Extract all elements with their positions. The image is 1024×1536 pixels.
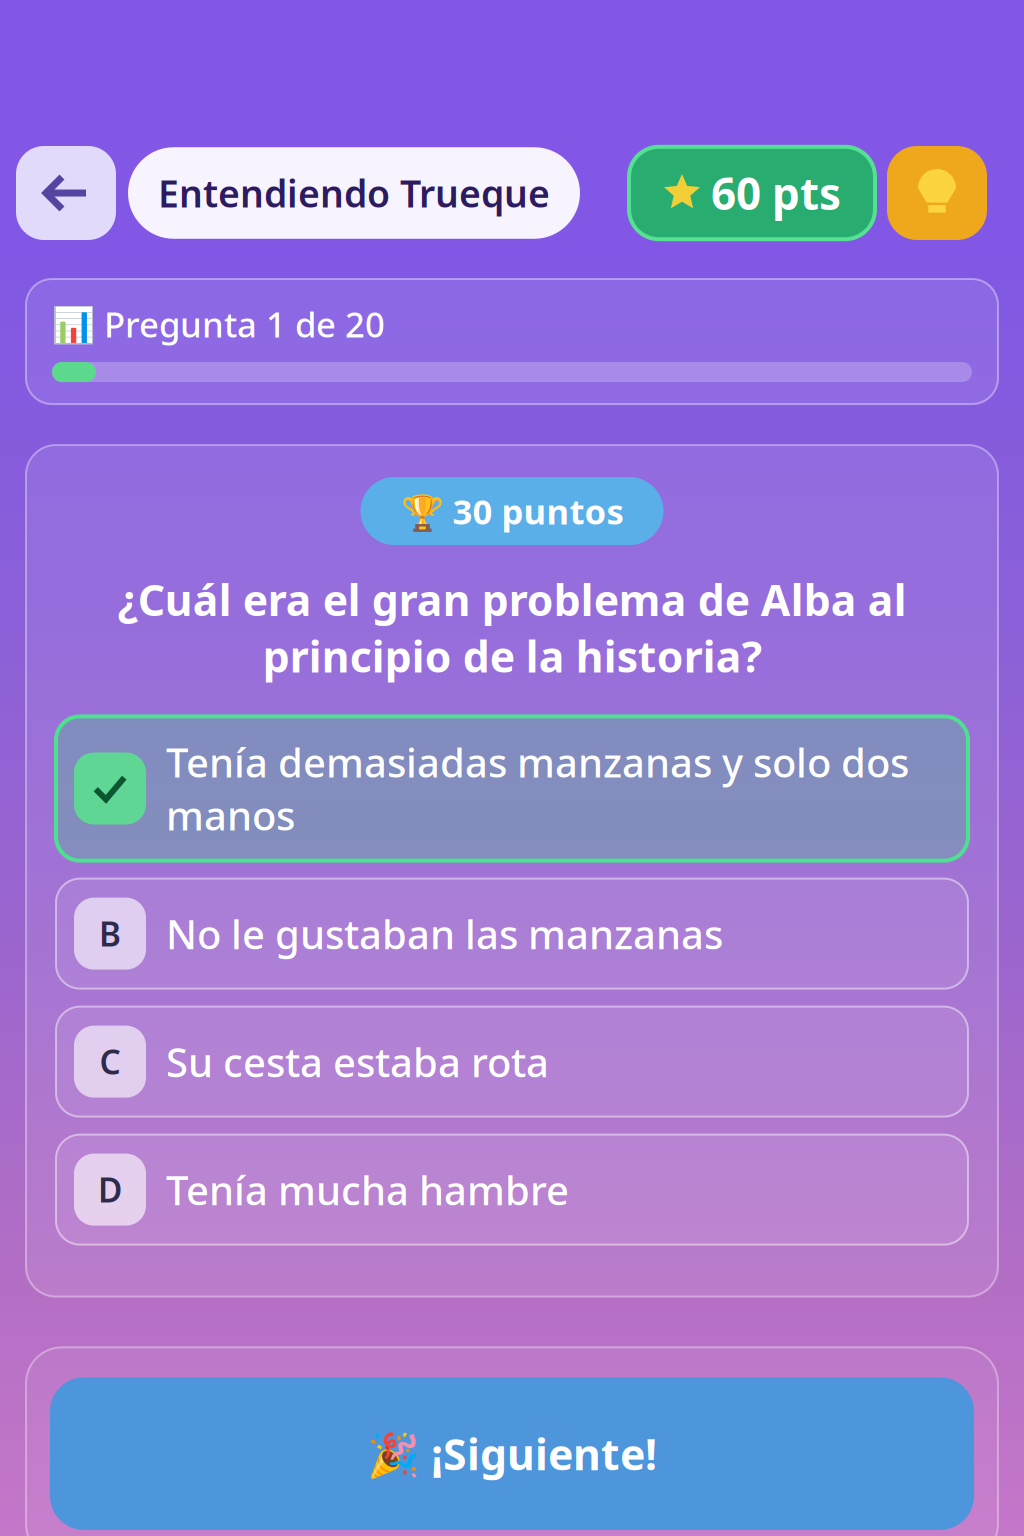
staticText: B <box>99 911 121 956</box>
button[interactable]: Hint <box>887 146 987 240</box>
staticText: ¿Cuál era el gran problema de Alba al pr… <box>117 571 906 684</box>
button[interactable]: 🎉 ¡Siguiente! <box>50 1377 974 1530</box>
button[interactable]: D <box>56 1135 968 1245</box>
staticText: D <box>98 1167 122 1212</box>
button[interactable]: Back <box>16 146 116 240</box>
staticText: C <box>99 1039 120 1084</box>
staticText: 60 pts <box>711 164 841 222</box>
button[interactable]: Tenía demasiadas manzanas y solo dos man… <box>56 716 968 861</box>
button[interactable]: B <box>56 879 968 989</box>
button[interactable]: Entendiendo Trueque <box>128 147 580 239</box>
button[interactable]: 60 pts <box>629 147 875 239</box>
staticText: Su cesta estaba rota <box>166 1035 549 1088</box>
staticText: Entendiendo Trueque <box>158 168 550 218</box>
staticText: 🏆 30 puntos <box>400 488 623 534</box>
staticText: 📊 Pregunta 1 de 20 <box>52 301 385 347</box>
button[interactable]: C <box>56 1007 968 1117</box>
staticText: Tenía demasiadas manzanas y solo dos man… <box>166 735 909 842</box>
staticText: Tenía mucha hambre <box>166 1163 569 1216</box>
staticText: 🎉 ¡Siguiente! <box>367 1425 657 1482</box>
staticText: No le gustaban las manzanas <box>166 907 723 960</box>
